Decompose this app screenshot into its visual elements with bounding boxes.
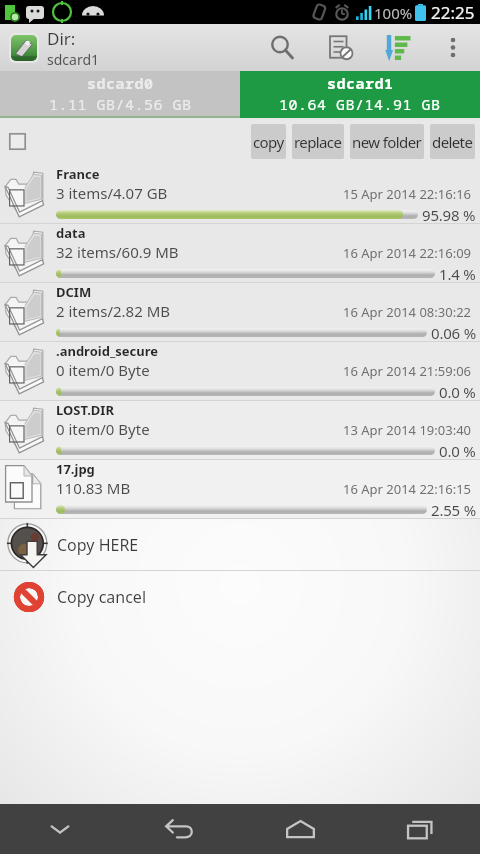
staticText: sdcard0 bbox=[87, 73, 154, 93]
button[interactable]: LOST.DIR bbox=[0, 401, 480, 459]
button[interactable]: copy bbox=[251, 124, 286, 159]
button[interactable]: Copy cancel bbox=[0, 571, 480, 622]
staticText: 95.98 % bbox=[422, 205, 476, 223]
staticText: 0.0 % bbox=[439, 441, 476, 459]
button[interactable]: DCIM bbox=[0, 283, 480, 341]
button[interactable]: sdcard1 bbox=[240, 71, 480, 116]
staticText: delete bbox=[432, 132, 473, 152]
staticText: 17.jpg bbox=[56, 460, 95, 478]
button[interactable]: Copy HERE bbox=[0, 519, 480, 570]
staticText: 15 Apr 2014 22:16:16 bbox=[343, 185, 472, 203]
button[interactable]: sdcard0 bbox=[0, 71, 240, 116]
staticText: 16 Apr 2014 08:30:22 bbox=[343, 303, 472, 321]
staticText: data bbox=[56, 224, 86, 242]
staticText: DCIM bbox=[56, 283, 92, 301]
button[interactable]: Select all bbox=[9, 133, 26, 150]
button[interactable]: More options bbox=[426, 24, 480, 71]
staticText: 0.0 % bbox=[439, 382, 476, 400]
staticText: 22:25 bbox=[431, 1, 475, 24]
button[interactable]: Hide keyboard bbox=[0, 804, 120, 854]
staticText: 1.11 GB/4.56 GB bbox=[49, 94, 192, 114]
staticText: replace bbox=[294, 132, 342, 152]
button[interactable]: new folder bbox=[350, 124, 424, 159]
button[interactable]: Home bbox=[240, 804, 360, 854]
staticText: 2.55 % bbox=[431, 500, 476, 518]
button[interactable]: Search bbox=[253, 24, 311, 71]
staticText: copy bbox=[253, 132, 284, 152]
button[interactable]: Sort bbox=[369, 24, 426, 71]
button[interactable]: 17.jpg bbox=[0, 460, 480, 518]
button[interactable]: France bbox=[0, 165, 480, 223]
button[interactable]: .android_secure bbox=[0, 342, 480, 400]
staticText: sdcard1 bbox=[47, 50, 100, 69]
staticText: 0.06 % bbox=[431, 323, 476, 341]
staticText: 100% bbox=[374, 3, 413, 23]
staticText: 110.83 MB bbox=[56, 478, 131, 498]
staticText: Dir: bbox=[47, 27, 76, 50]
button[interactable]: data bbox=[0, 224, 480, 282]
staticText: 16 Apr 2014 22:16:09 bbox=[343, 244, 472, 262]
button[interactable]: replace bbox=[292, 124, 344, 159]
staticText: 10.64 GB/14.91 GB bbox=[279, 94, 441, 114]
button[interactable]: Recent apps bbox=[360, 804, 480, 854]
button[interactable]: Back bbox=[120, 804, 240, 854]
staticText: Copy HERE bbox=[57, 534, 139, 556]
staticText: LOST.DIR bbox=[56, 401, 114, 419]
staticText: 1.4 % bbox=[439, 264, 476, 282]
staticText: Copy cancel bbox=[57, 586, 147, 608]
staticText: 2 items/2.82 MB bbox=[56, 301, 171, 321]
staticText: 16 Apr 2014 21:59:06 bbox=[343, 362, 472, 380]
staticText: 32 items/60.9 MB bbox=[56, 242, 179, 262]
staticText: 3 items/4.07 GB bbox=[56, 183, 168, 203]
staticText: 0 item/0 Byte bbox=[56, 419, 150, 439]
staticText: new folder bbox=[352, 132, 422, 152]
staticText: 16 Apr 2014 22:16:15 bbox=[343, 480, 472, 498]
staticText: France bbox=[56, 165, 100, 183]
button[interactable]: Select items bbox=[311, 24, 369, 71]
staticText: 13 Apr 2014 19:03:40 bbox=[343, 421, 472, 439]
button[interactable]: delete bbox=[430, 124, 475, 159]
staticText: 0 item/0 Byte bbox=[56, 360, 150, 380]
staticText: .android_secure bbox=[56, 342, 158, 360]
staticText: sdcard1 bbox=[327, 73, 394, 93]
